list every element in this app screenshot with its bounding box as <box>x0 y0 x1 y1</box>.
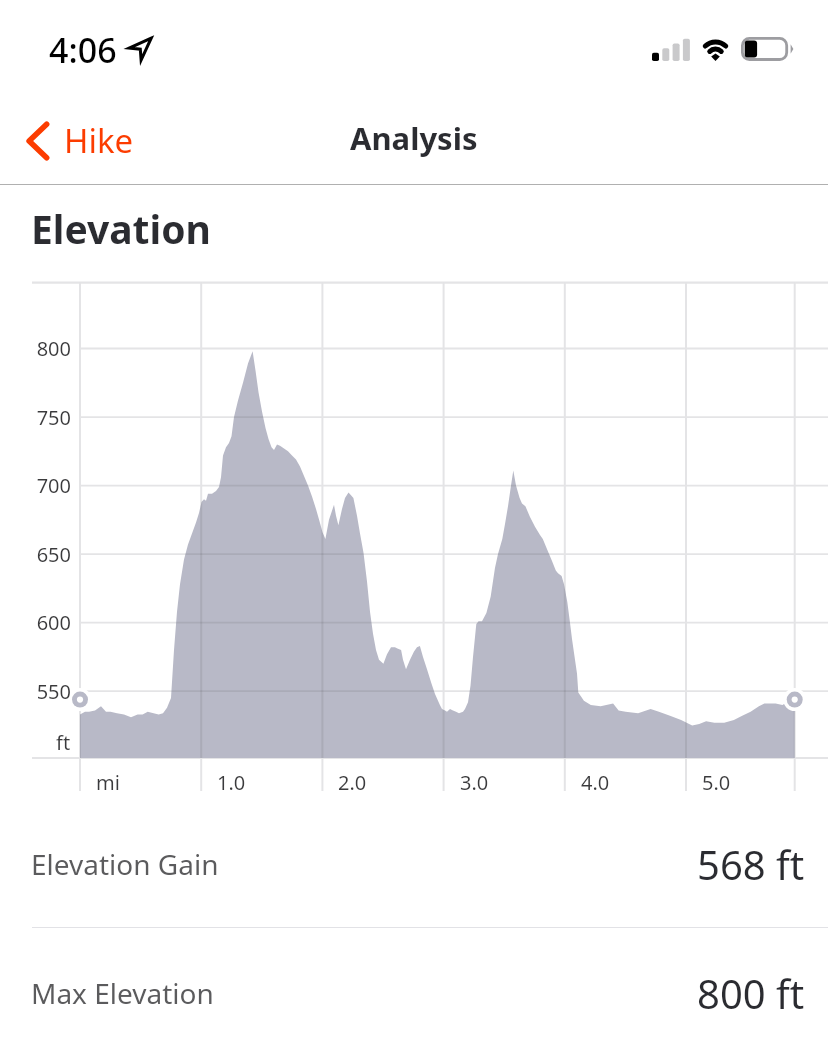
staticText: mi <box>96 769 120 796</box>
staticText: 800 ft <box>697 966 805 1020</box>
staticText: 1.0 <box>217 769 246 796</box>
button[interactable]: Back to Hike <box>18 112 148 169</box>
other: Location <box>127 36 155 64</box>
staticText: 4:06 <box>49 27 117 73</box>
staticText: Analysis <box>350 117 478 159</box>
button[interactable]: Max Elevation <box>0 947 828 1038</box>
staticText: 750 <box>36 404 71 431</box>
staticText: 650 <box>36 541 71 568</box>
staticText: Hike <box>64 118 134 163</box>
staticText: 700 <box>36 472 71 499</box>
staticText: 600 <box>36 609 71 636</box>
button[interactable]: Elevation Gain <box>0 818 828 910</box>
staticText: 800 <box>36 335 71 362</box>
staticText: Elevation Gain <box>31 845 219 883</box>
staticText: 550 <box>36 678 71 705</box>
staticText: 5.0 <box>702 769 731 796</box>
staticText: Max Elevation <box>31 974 214 1012</box>
staticText: ft <box>56 729 71 756</box>
staticText: 3.0 <box>460 769 489 796</box>
staticText: Elevation <box>31 202 211 255</box>
staticText: 568 ft <box>697 837 805 891</box>
staticText: 4.0 <box>581 769 610 796</box>
staticText: 2.0 <box>338 769 367 796</box>
